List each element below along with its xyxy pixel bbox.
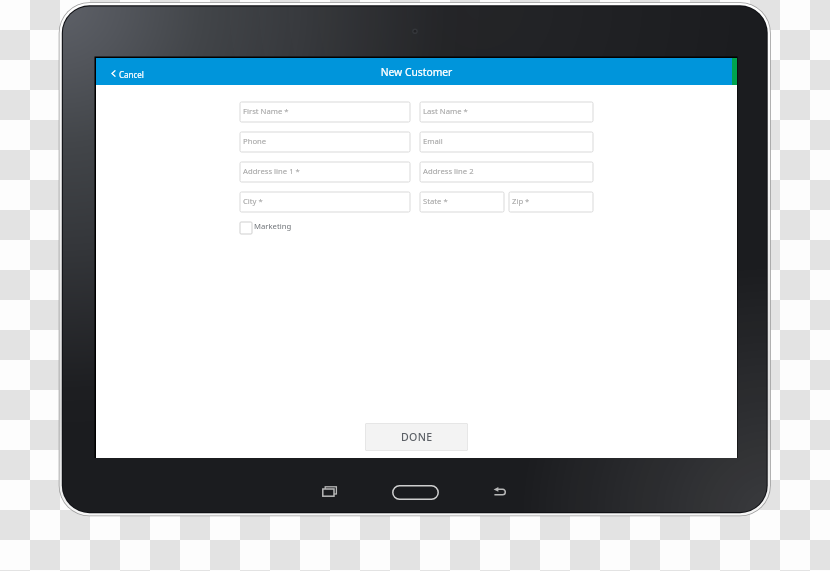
staticText: Last Name * (423, 106, 468, 116)
button[interactable]: State * (420, 192, 504, 212)
staticText: New Customer (96, 65, 737, 79)
button[interactable]: Marketing (240, 220, 340, 236)
staticText: City * (243, 196, 263, 206)
button[interactable]: Home (392, 485, 439, 500)
staticText: Phone (243, 136, 267, 146)
button[interactable]: First Name * (240, 102, 410, 122)
button[interactable]: Email (420, 132, 593, 152)
button[interactable]: Address line 2 (420, 162, 593, 182)
button[interactable]: Address line 1 * (240, 162, 410, 182)
button[interactable]: Last Name * (420, 102, 593, 122)
button[interactable]: City * (240, 192, 410, 212)
staticText: Zip * (512, 196, 530, 206)
staticText: State * (423, 196, 448, 206)
staticText: Address line 1 * (243, 166, 300, 176)
button[interactable]: Zip * (509, 192, 593, 212)
staticText: Cancel (119, 69, 144, 80)
staticText: Marketing (254, 221, 292, 231)
button[interactable]: Phone (240, 132, 410, 152)
button[interactable]: Back (490, 484, 512, 500)
staticText: First Name * (243, 106, 289, 116)
staticText: DONE (401, 430, 433, 444)
button[interactable]: Recent apps (313, 480, 345, 504)
button[interactable]: DONE (365, 423, 468, 451)
staticText: Email (423, 136, 443, 146)
staticText: Address line 2 (423, 166, 474, 176)
button[interactable]: Cancel (104, 58, 160, 85)
